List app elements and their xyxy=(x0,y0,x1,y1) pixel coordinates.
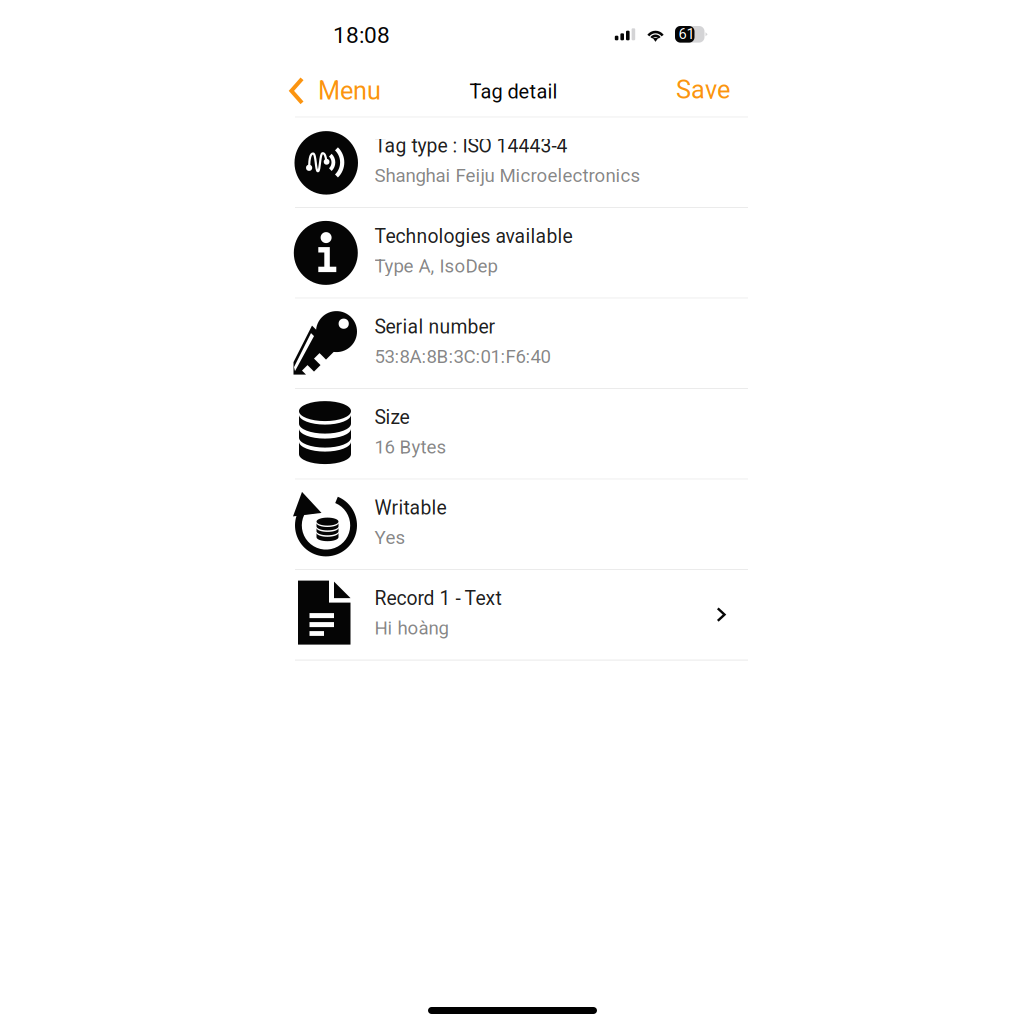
staticText: 18:08 xyxy=(333,22,390,49)
button[interactable]: Size xyxy=(295,389,748,479)
button[interactable]: Tag type : ISO 14443-4 xyxy=(295,118,748,207)
button[interactable]: Record 1 - Text xyxy=(295,570,748,660)
button[interactable]: Serial number xyxy=(295,299,748,388)
staticText: Shanghai Feiju Microelectronics xyxy=(374,165,640,186)
staticText: 53:8A:8B:3C:01:F6:40 xyxy=(374,346,550,367)
staticText: Technologies available xyxy=(374,225,572,248)
button[interactable]: Save xyxy=(669,66,737,114)
staticText: Size xyxy=(374,406,409,429)
staticText: Writable xyxy=(374,497,446,519)
staticText: Type A, IsoDep xyxy=(374,255,497,277)
button[interactable]: Writable xyxy=(295,480,748,569)
staticText: Record 1 - Text xyxy=(374,587,501,610)
staticText: Hi hoàng xyxy=(374,617,448,639)
staticText: Save xyxy=(676,75,730,105)
staticText: Tag type : ISO 14443-4 xyxy=(374,135,567,157)
staticText: Yes xyxy=(374,527,405,548)
staticText: Menu xyxy=(318,76,381,106)
button[interactable]: Technologies available xyxy=(295,208,748,298)
staticText: 16 Bytes xyxy=(374,436,446,458)
staticText: Serial number xyxy=(374,316,495,338)
staticText: Tag detail xyxy=(469,80,557,103)
button[interactable]: Menu xyxy=(284,67,386,115)
staticText: 61 xyxy=(678,25,694,42)
